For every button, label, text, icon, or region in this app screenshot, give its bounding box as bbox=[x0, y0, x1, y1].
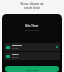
staticText: 24 min bbox=[12, 56, 19, 59]
button[interactable]: Breakfast bbox=[4, 43, 60, 51]
staticText: 18 min bbox=[12, 47, 19, 50]
button[interactable]: Start meal bbox=[5, 66, 59, 72]
staticText: Bite Timer bbox=[2, 24, 62, 28]
staticText: Lunch bbox=[12, 53, 19, 56]
staticText: Breakfast bbox=[12, 44, 22, 47]
button[interactable]: Lunch bbox=[4, 52, 60, 60]
staticText: Start meal bbox=[26, 68, 39, 71]
staticText: Slow down at each bite bbox=[20, 1, 44, 11]
staticText: Track your pace bbox=[2, 29, 62, 32]
